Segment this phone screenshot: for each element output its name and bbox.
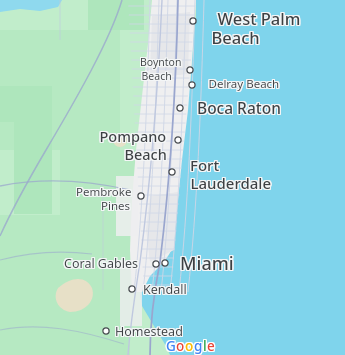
button[interactable]: Map of South Florida [0, 0, 345, 355]
